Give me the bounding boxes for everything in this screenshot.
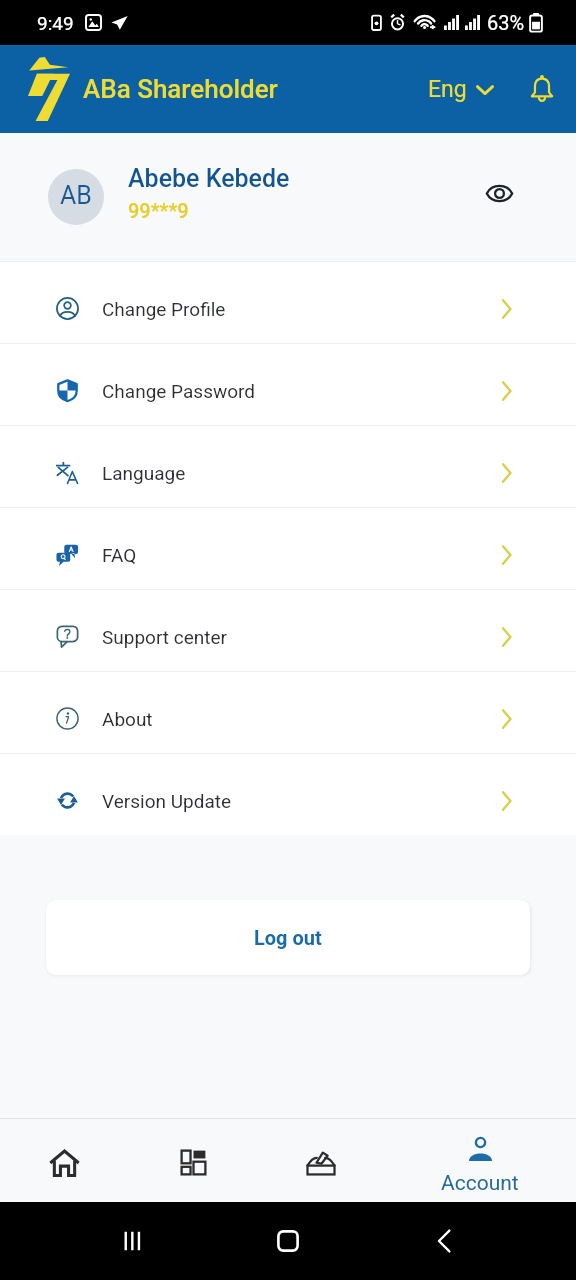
button[interactable]: Change Profile <box>0 262 576 343</box>
button[interactable]: Notifications <box>520 67 564 111</box>
staticText: 9:49 <box>37 12 74 34</box>
staticText: Log out <box>254 926 322 949</box>
button[interactable]: Vote <box>265 1119 377 1202</box>
staticText: Eng <box>428 76 467 103</box>
staticText: Language <box>102 462 186 484</box>
staticText: AB <box>60 181 92 210</box>
button[interactable]: Version Update <box>0 754 576 835</box>
staticText: About <box>102 708 153 730</box>
button[interactable]: FAQ <box>0 508 576 589</box>
staticText: Version Update <box>102 790 232 812</box>
button[interactable]: About <box>0 672 576 753</box>
button[interactable]: Services <box>137 1119 249 1202</box>
staticText: Account <box>441 1171 519 1196</box>
staticText: Change Profile <box>102 298 226 320</box>
button[interactable]: Change Password <box>0 344 576 425</box>
staticText: ABa Shareholder <box>83 74 278 104</box>
button[interactable]: Back <box>420 1217 468 1265</box>
staticText: Support center <box>102 626 228 648</box>
button[interactable]: Language <box>0 426 576 507</box>
button[interactable]: Home <box>8 1119 120 1202</box>
button[interactable]: Account <box>424 1119 536 1202</box>
staticText: Change Password <box>102 380 256 402</box>
button[interactable]: Eng <box>422 68 500 111</box>
button[interactable]: Recents <box>108 1217 156 1265</box>
staticText: FAQ <box>102 544 137 566</box>
staticText: Abebe Kebede <box>128 164 290 193</box>
button[interactable]: Home <box>264 1217 312 1265</box>
button[interactable]: Show account number <box>477 171 521 215</box>
button[interactable]: Support center <box>0 590 576 671</box>
button[interactable]: Log out <box>46 900 530 975</box>
staticText: 63% <box>487 11 525 34</box>
staticText: 99***9 <box>128 199 189 222</box>
